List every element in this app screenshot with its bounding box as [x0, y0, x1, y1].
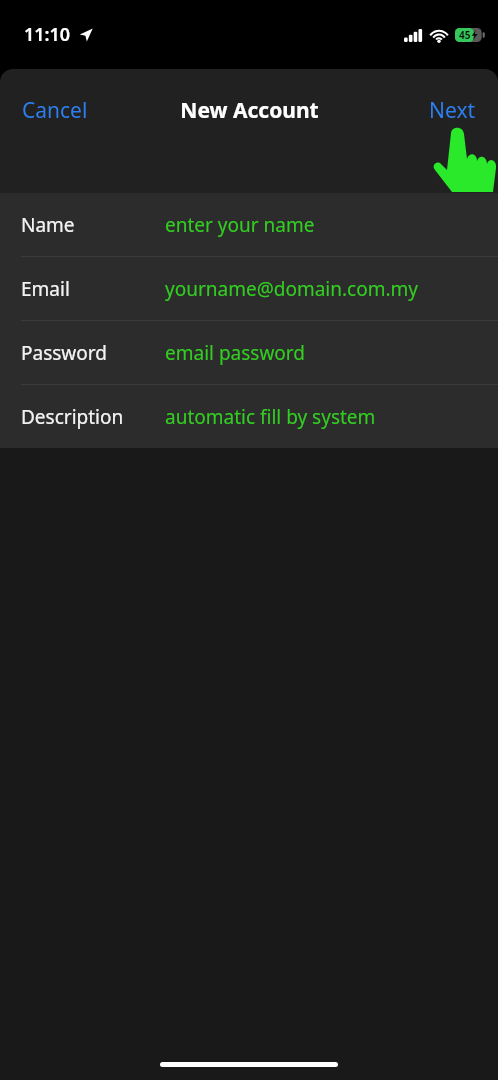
button[interactable]: Cancel [0, 88, 110, 133]
staticText: Cancel [22, 96, 88, 125]
staticText: enter your name [165, 212, 315, 238]
button[interactable]: Name [0, 193, 498, 256]
staticText: automatic fill by system [165, 404, 376, 430]
button[interactable]: Description [0, 385, 498, 448]
staticText: Name [21, 212, 75, 238]
button[interactable]: Email [0, 257, 498, 320]
staticText: Email [21, 276, 70, 302]
staticText: New Account [180, 96, 319, 125]
staticText: Password [21, 340, 107, 366]
button[interactable]: Password [0, 321, 498, 384]
staticText: email password [165, 340, 306, 366]
staticText: yourname@domain.com.my [165, 276, 419, 302]
staticText: 11:10 [24, 22, 71, 47]
staticText: 45 [459, 28, 471, 42]
staticText: Next [429, 96, 476, 125]
staticText: Description [21, 404, 124, 430]
button[interactable]: Next [407, 88, 498, 133]
